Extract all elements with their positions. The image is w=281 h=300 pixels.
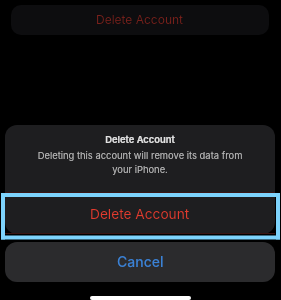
staticText: Delete Account: [96, 12, 184, 27]
staticText: Deleting this account will remove its da…: [29, 150, 251, 175]
button[interactable]: Cancel: [5, 242, 275, 282]
staticText: Cancel: [117, 253, 164, 270]
staticText: Delete Account: [90, 206, 190, 223]
staticText: Delete Account: [105, 134, 175, 145]
button[interactable]: Delete Account: [11, 5, 269, 35]
button[interactable]: Delete Account: [5, 194, 275, 235]
